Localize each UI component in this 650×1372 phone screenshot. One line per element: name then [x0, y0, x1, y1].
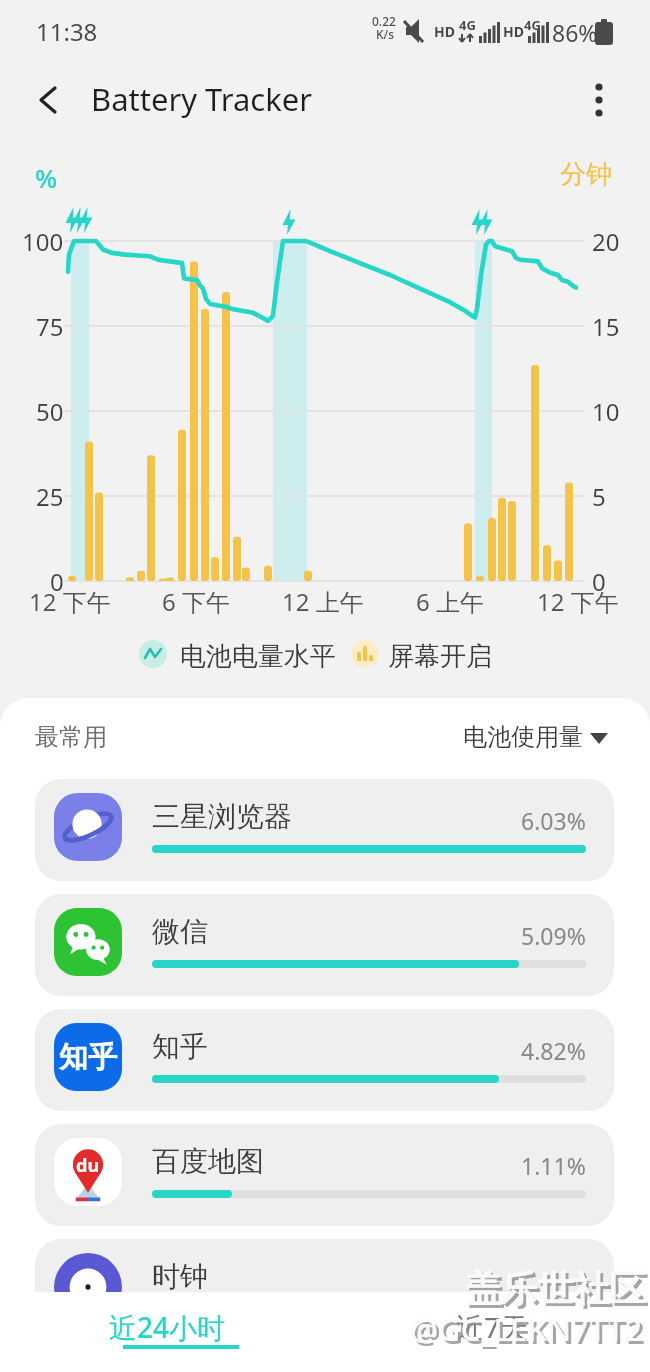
- staticText: 最常用: [35, 722, 107, 752]
- staticText: 盖乐世社区: [465, 1266, 645, 1311]
- button[interactable]: 时钟: [35, 1239, 614, 1341]
- staticText: 4.82%: [521, 1035, 586, 1066]
- staticText: 屏幕开启: [388, 640, 492, 673]
- staticText: 5: [592, 480, 606, 513]
- staticText: 75: [36, 310, 64, 343]
- staticText: 25: [36, 480, 64, 513]
- staticText: 微信: [152, 914, 208, 949]
- button[interactable]: 近24小时: [95, 1292, 239, 1372]
- staticText: 5.09%: [521, 920, 586, 951]
- staticText: 100: [22, 225, 64, 258]
- staticText: du: [76, 1153, 100, 1178]
- staticText: 0.22: [372, 13, 396, 29]
- staticText: 86%: [552, 17, 598, 48]
- staticText: Battery Tracker: [91, 78, 313, 120]
- staticText: @GC_LEKN7TT2: [413, 1311, 645, 1353]
- staticText: K/s: [376, 26, 395, 42]
- staticText: 三星浏览器: [152, 799, 292, 834]
- button[interactable]: 知乎: [35, 1009, 614, 1111]
- button[interactable]: 电池使用量: [440, 712, 620, 760]
- staticText: @GC_LEKN7TT2: [410, 1308, 642, 1350]
- staticText: HD: [434, 22, 455, 41]
- button[interactable]: 近7天: [420, 1292, 564, 1372]
- staticText: HD: [503, 22, 524, 41]
- staticText: 1.11%: [521, 1150, 586, 1181]
- staticText: 4G: [459, 16, 476, 34]
- staticText: 12 下午: [537, 585, 619, 618]
- staticText: 分钟: [560, 158, 612, 191]
- staticText: 12 上午: [282, 585, 364, 618]
- staticText: 0: [592, 565, 606, 598]
- staticText: 15: [592, 310, 620, 343]
- staticText: 20: [592, 225, 620, 258]
- button[interactable]: [28, 78, 72, 122]
- staticText: 12 下午: [29, 585, 111, 618]
- staticText: 50: [36, 395, 64, 428]
- staticText: 近7天: [456, 1308, 529, 1346]
- staticText: 知乎: [152, 1029, 208, 1064]
- button[interactable]: du: [35, 1124, 614, 1226]
- button[interactable]: 三星浏览器: [35, 779, 614, 881]
- staticText: 6.03%: [521, 805, 586, 836]
- staticText: 6 上午: [416, 585, 484, 618]
- staticText: 电池使用量: [463, 722, 583, 752]
- staticText: 电池电量水平: [180, 640, 336, 673]
- staticText: 知乎: [59, 1039, 117, 1076]
- staticText: 6 下午: [162, 585, 230, 618]
- staticText: 近24小时: [109, 1308, 226, 1346]
- staticText: 盖乐世社区: [468, 1269, 648, 1314]
- staticText: %: [35, 160, 58, 195]
- staticText: 百度地图: [152, 1144, 264, 1179]
- button[interactable]: [578, 78, 620, 120]
- staticText: 时钟: [152, 1259, 208, 1294]
- staticText: 0: [50, 565, 64, 598]
- button[interactable]: 微信: [35, 894, 614, 996]
- staticText: 4G: [524, 16, 541, 34]
- staticText: 11:38: [36, 15, 98, 48]
- staticText: 10: [592, 395, 620, 428]
